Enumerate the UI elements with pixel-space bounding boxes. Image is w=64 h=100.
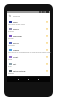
- button[interactable]: Home: [25, 77, 31, 82]
- button[interactable]: Chat: [7, 54, 50, 61]
- button[interactable]: Git: [7, 61, 50, 68]
- staticText: Pull: [8, 65, 12, 68]
- staticText: Places: [8, 30, 14, 33]
- other: Star: [46, 70, 48, 72]
- button[interactable]: News: [7, 47, 50, 54]
- staticText: Shared: [8, 44, 15, 47]
- staticText: See what is happening in the world right…: [8, 51, 51, 54]
- button[interactable]: Search: [7, 13, 50, 19]
- staticText: Msg: [8, 58, 13, 61]
- staticText: Medium: [13, 35, 22, 38]
- staticText: Maps: [13, 28, 19, 31]
- staticText: Mail: [13, 21, 18, 24]
- staticText: Search: [13, 15, 21, 18]
- button[interactable]: Back: [15, 77, 21, 82]
- staticText: Interesting: [13, 70, 26, 73]
- other: Star: [46, 56, 48, 58]
- button[interactable]: Interesting: [7, 68, 50, 75]
- other: Search: [9, 15, 11, 17]
- staticText: Today: [8, 37, 14, 40]
- button[interactable]: Mail: [7, 19, 50, 26]
- button[interactable]: Drive: [7, 40, 50, 47]
- other: Star: [46, 42, 48, 44]
- other: Star: [46, 35, 48, 37]
- staticText: News: [13, 49, 20, 52]
- staticText: Drive: [13, 42, 19, 45]
- button[interactable]: Medium: [7, 33, 50, 40]
- staticText: Chat: [13, 56, 19, 59]
- staticText: Digest: [8, 72, 15, 75]
- button[interactable]: Recents: [35, 77, 41, 82]
- other: Star: [46, 63, 48, 65]
- button[interactable]: Maps: [7, 26, 50, 33]
- staticText: Security alert now: [8, 23, 25, 26]
- staticText: Git: [13, 63, 17, 66]
- other: Star: [46, 21, 48, 23]
- other: Star: [46, 49, 48, 51]
- other: Star: [46, 28, 48, 30]
